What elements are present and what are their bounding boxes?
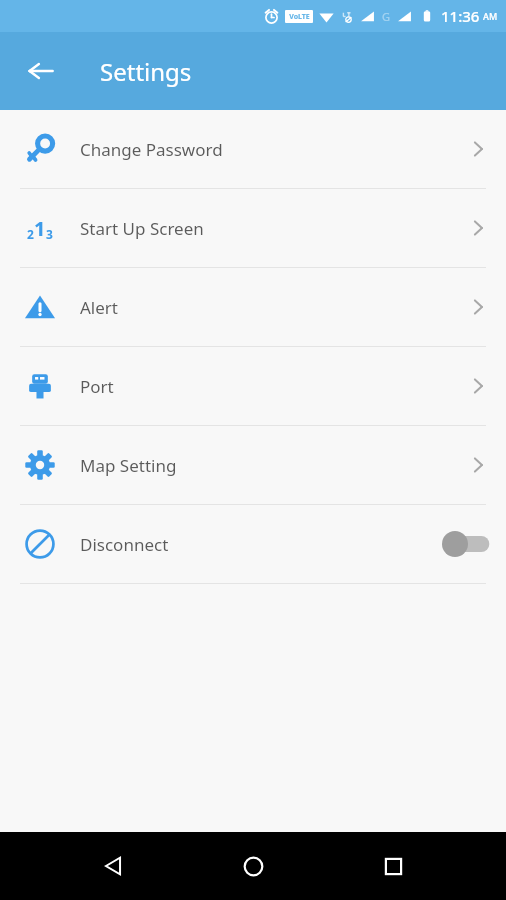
staticText: 2 [27, 226, 34, 242]
staticText: 3 [46, 226, 53, 242]
button[interactable]: Recent apps [366, 839, 420, 893]
button[interactable]: 2 [0, 189, 506, 267]
staticText: Port [80, 375, 450, 398]
staticText: AM [483, 10, 498, 22]
staticText: G [382, 9, 391, 24]
button[interactable]: Disconnect toggle [430, 524, 506, 564]
button[interactable]: Back [18, 48, 64, 94]
button[interactable]: Alert [0, 268, 506, 346]
button[interactable]: Port [0, 347, 506, 425]
staticText: Start Up Screen [80, 217, 450, 240]
button[interactable]: Disconnect [0, 505, 506, 583]
staticText: 1 [34, 215, 46, 242]
button[interactable]: Home [226, 839, 280, 893]
staticText: Disconnect [80, 533, 430, 556]
staticText: VoLTE [289, 12, 310, 22]
button[interactable]: Map Setting [0, 426, 506, 504]
staticText: 11:36 [441, 6, 480, 26]
staticText: Settings [100, 55, 192, 88]
staticText: Alert [80, 296, 450, 319]
button[interactable]: Back [86, 839, 140, 893]
staticText: Change Password [80, 138, 450, 161]
button[interactable]: Change Password [0, 110, 506, 188]
staticText: Map Setting [80, 454, 450, 477]
